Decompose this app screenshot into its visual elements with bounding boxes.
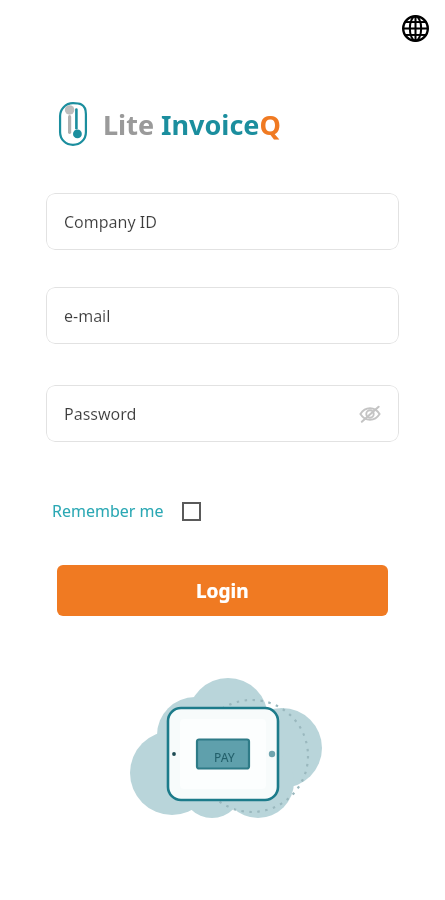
staticText: PAY xyxy=(214,749,235,765)
staticText: Lite InvoiceQ xyxy=(103,106,281,143)
button[interactable]: Company ID xyxy=(46,193,399,250)
button[interactable]: Remember me xyxy=(46,494,207,528)
button[interactable]: Language xyxy=(395,8,435,48)
button[interactable]: e-mail xyxy=(46,287,399,344)
staticText: Remember me xyxy=(52,500,164,522)
button[interactable]: Login xyxy=(57,565,388,616)
staticText: Password xyxy=(64,403,137,425)
button[interactable]: Show password xyxy=(355,399,385,429)
staticText: Company ID xyxy=(64,211,157,233)
staticText: Login xyxy=(196,578,249,604)
staticText: e-mail xyxy=(64,305,111,327)
button[interactable]: Password xyxy=(46,385,399,442)
